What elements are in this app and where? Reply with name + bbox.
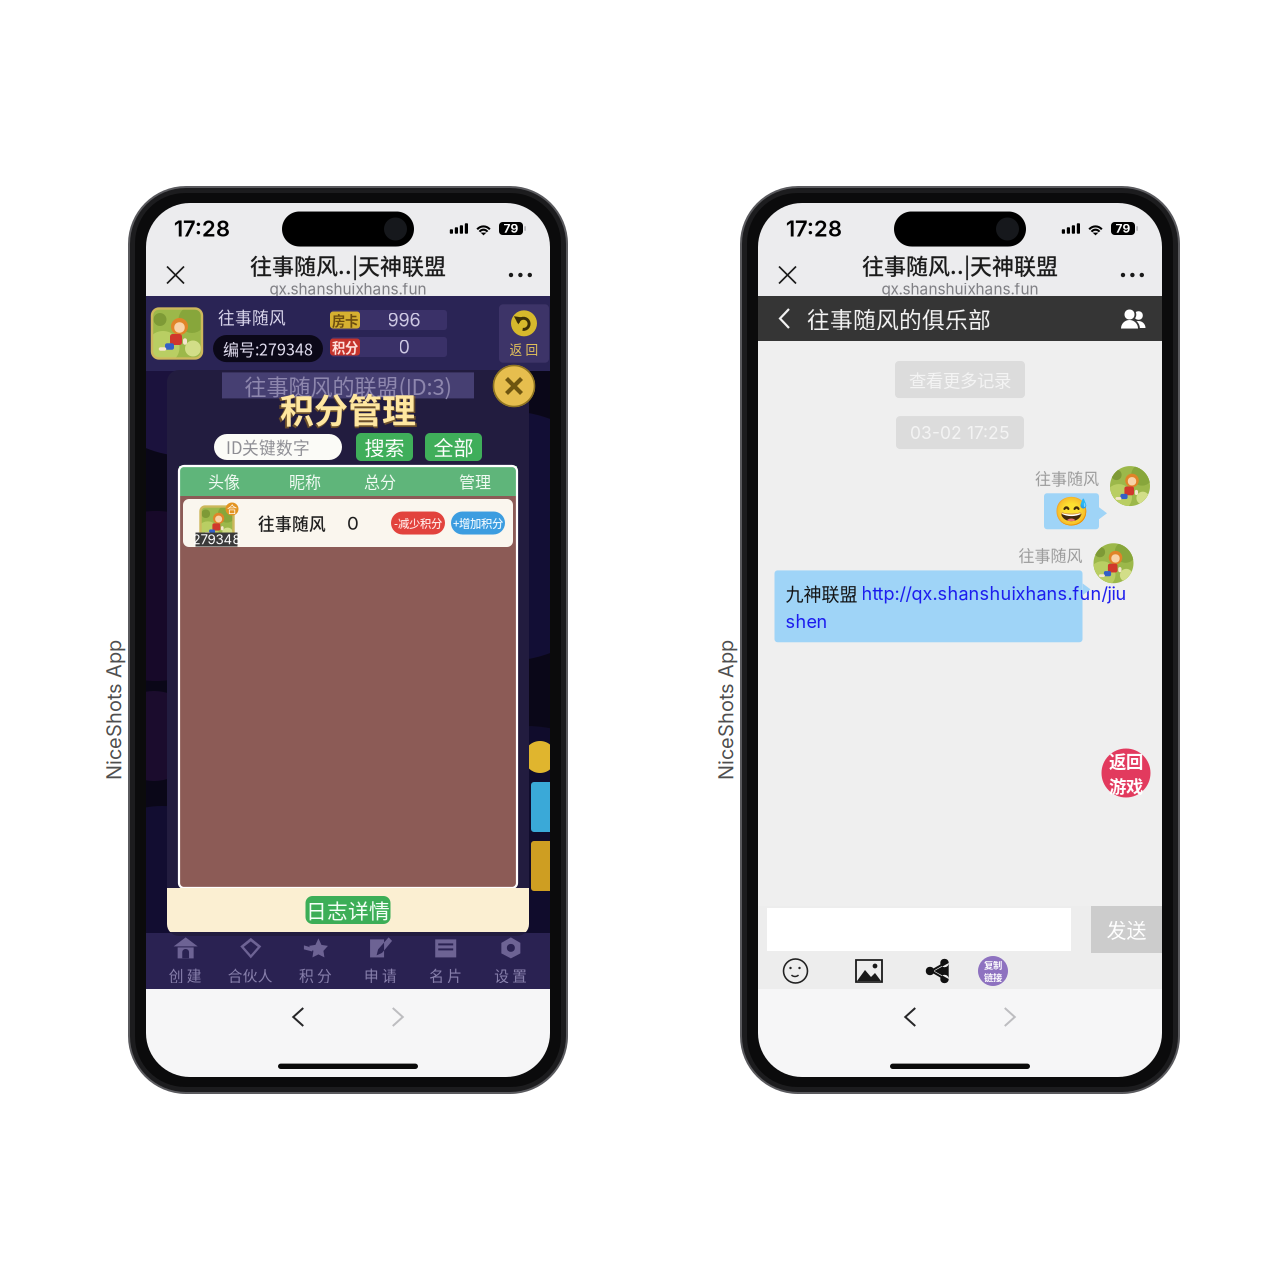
staticText: +增加积分	[453, 515, 503, 531]
staticText: 17:28	[174, 215, 230, 242]
staticText: 合	[227, 502, 237, 516]
staticText: 合伙人	[228, 964, 273, 986]
button[interactable]: Back	[886, 989, 934, 1045]
staticText: 链接	[984, 970, 1002, 984]
staticText: 往事随风的联盟(ID:3)	[244, 369, 451, 401]
staticText: 0	[347, 512, 359, 534]
staticText: qx.shanshuixhans.fun	[269, 280, 426, 298]
button[interactable]: 设 置	[485, 936, 537, 986]
staticText: 复制	[984, 958, 1002, 971]
staticText: 79	[503, 221, 518, 236]
staticText: 积分	[332, 337, 358, 357]
staticText: 日志详情	[306, 895, 390, 925]
staticText: 😅	[1054, 495, 1089, 528]
staticText: 往事随风	[1018, 543, 1082, 566]
button[interactable]: 搜索	[342, 433, 413, 461]
staticText: 返回	[1109, 748, 1143, 773]
button[interactable]: 创 建	[159, 936, 211, 986]
staticText: 头像	[208, 469, 240, 493]
staticText: 往事随风	[258, 511, 326, 535]
staticText: NiceShots App	[656, 698, 796, 722]
staticText: 03-02 17:25	[910, 422, 1010, 443]
staticText: 搜索	[364, 432, 404, 461]
staticText: 0	[398, 336, 409, 358]
staticText: 积分管理	[280, 384, 416, 433]
staticText: 编号:279348	[223, 337, 313, 360]
button[interactable]: Back	[758, 296, 807, 341]
staticText: 积 分	[299, 964, 332, 986]
button[interactable]: 全部	[413, 433, 482, 461]
button[interactable]: 申 请	[355, 936, 407, 986]
button[interactable]: Close	[146, 253, 199, 296]
button[interactable]: 返回	[1101, 748, 1150, 797]
staticText: 996	[387, 309, 420, 331]
button[interactable]: +增加积分	[445, 511, 513, 534]
button[interactable]: More	[495, 255, 550, 295]
staticText: 往事随风..|天神联盟	[250, 249, 446, 281]
staticText: 名 片	[429, 964, 462, 986]
staticText: ID关键数字	[226, 435, 310, 459]
button[interactable]: Members	[1106, 296, 1162, 341]
staticText: 昵称	[289, 469, 321, 493]
staticText: 管理	[459, 469, 491, 493]
staticText: 游戏	[1109, 773, 1143, 798]
staticText: NiceShots App	[44, 698, 184, 722]
staticText: 积分管理	[278, 385, 418, 435]
staticText: 往事随风	[218, 305, 286, 329]
button[interactable]: Forward	[986, 989, 1034, 1045]
button[interactable]: 返 回	[499, 304, 561, 363]
button[interactable]: Close dialog	[483, 370, 529, 416]
staticText: qx.shanshuixhans.fun	[881, 280, 1038, 298]
staticText: shen	[785, 610, 827, 632]
button[interactable]: 合伙人	[224, 936, 276, 986]
button[interactable]: 积 分	[289, 936, 341, 986]
staticText: 全部	[433, 432, 473, 461]
staticText: 设 置	[494, 964, 527, 986]
staticText: 发送	[1106, 915, 1146, 944]
staticText: 总分	[364, 469, 396, 493]
button[interactable]: 发送	[1091, 906, 1162, 953]
staticText: 创 建	[169, 964, 202, 986]
staticText: 查看更多记录	[909, 367, 1011, 392]
staticText: 79	[1115, 221, 1130, 236]
button[interactable]: Forward	[374, 989, 422, 1045]
staticText: 返 回	[509, 339, 538, 358]
staticText: -减少积分	[394, 515, 442, 531]
staticText: 往事随风..|天神联盟	[862, 249, 1058, 281]
button[interactable]: Close	[758, 253, 811, 296]
staticText: http://qx.shanshuixhans.fun/jiu	[861, 582, 1126, 604]
staticText: 往事随风的俱乐部	[807, 302, 991, 335]
staticText: 17:28	[786, 215, 842, 242]
button[interactable]: More	[1107, 255, 1162, 295]
staticText: 往事随风	[1035, 466, 1099, 489]
button[interactable]: Photo	[833, 957, 905, 985]
staticText: 九神联盟	[785, 580, 861, 606]
button[interactable]: -减少积分	[391, 511, 445, 534]
staticText: 房卡	[332, 310, 358, 330]
button[interactable]: Copy link	[970, 956, 1016, 986]
button[interactable]: Emoji	[758, 955, 833, 986]
staticText: 279348	[192, 531, 240, 547]
button[interactable]: Back	[274, 989, 322, 1045]
button[interactable]: 日志详情	[305, 896, 390, 924]
staticText: 申 请	[364, 964, 397, 986]
button[interactable]: Share	[905, 956, 970, 986]
button[interactable]: 名 片	[420, 936, 472, 986]
